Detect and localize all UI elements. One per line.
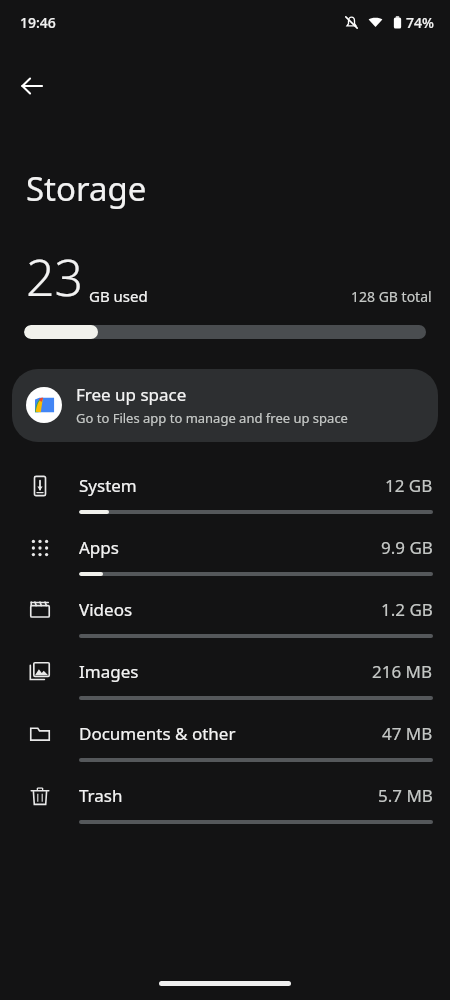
button[interactable]: Apps — [0, 522, 450, 584]
staticText: Videos — [79, 598, 133, 621]
staticText: 74% — [406, 13, 434, 32]
button[interactable]: Videos — [0, 584, 450, 646]
staticText: 128 GB total — [351, 287, 432, 306]
staticText: Free up space — [76, 383, 187, 406]
staticText: Storage — [26, 166, 147, 211]
staticText: 1.2 GB — [381, 598, 433, 621]
staticText: 5.7 MB — [378, 784, 433, 807]
button[interactable]: Free up space — [12, 369, 438, 442]
staticText: 19:46 — [20, 13, 56, 32]
staticText: GB used — [89, 286, 148, 306]
staticText: 12 GB — [385, 474, 433, 497]
button[interactable]: Images — [0, 646, 450, 708]
staticText: Apps — [79, 536, 119, 559]
staticText: 216 MB — [372, 660, 433, 683]
button[interactable]: Documents & other — [0, 708, 450, 770]
button[interactable]: Trash — [0, 770, 450, 832]
staticText: Documents & other — [79, 722, 236, 745]
staticText: System — [79, 474, 137, 497]
staticText: 47 MB — [382, 722, 433, 745]
staticText: Trash — [79, 784, 123, 807]
staticText: 23 — [26, 243, 84, 311]
staticText: 9.9 GB — [381, 536, 433, 559]
button[interactable]: Back — [10, 64, 54, 108]
button[interactable]: System — [0, 460, 450, 522]
staticText: Images — [79, 660, 139, 683]
staticText: Go to Files app to manage and free up sp… — [76, 409, 348, 427]
